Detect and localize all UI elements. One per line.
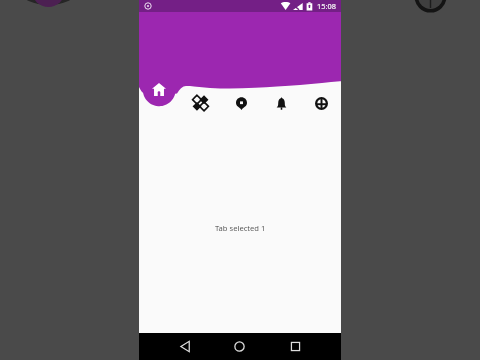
staticText: Tab selected 1: [215, 223, 266, 233]
button[interactable]: Account: [301, 90, 341, 116]
staticText: 15:08: [317, 1, 336, 11]
button[interactable]: Home: [220, 333, 258, 360]
button[interactable]: Places: [221, 90, 261, 116]
button[interactable]: Healing: [180, 90, 221, 116]
button[interactable]: Recent apps: [276, 333, 314, 360]
button[interactable]: Home: [139, 76, 179, 102]
button[interactable]: Back: [166, 333, 204, 360]
button[interactable]: Notifications: [261, 90, 301, 116]
